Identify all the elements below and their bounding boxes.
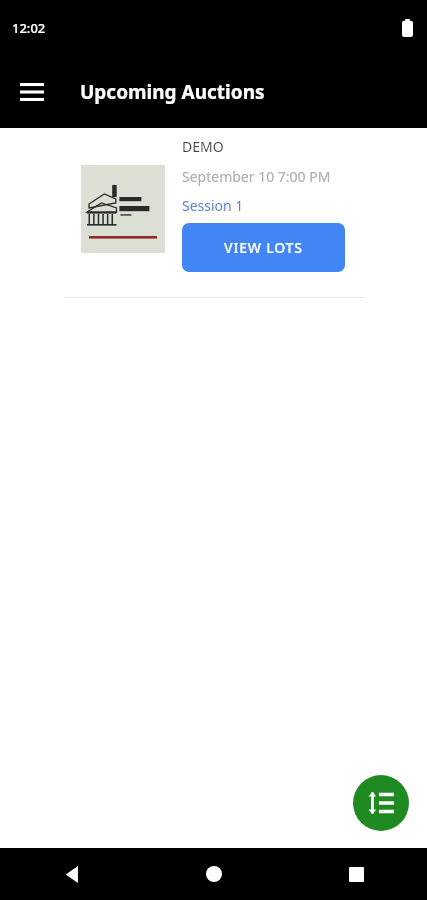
button[interactable]: Sort auctions — [353, 775, 409, 831]
staticText: Session 1 — [182, 196, 244, 215]
button[interactable]: VIEW LOTS — [182, 223, 345, 272]
staticText: 12:02 — [12, 19, 46, 37]
staticText: September 10 7:00 PM — [182, 167, 331, 186]
button[interactable]: Recent apps — [332, 850, 380, 898]
staticText: VIEW LOTS — [224, 238, 303, 257]
button[interactable]: Open navigation menu — [10, 70, 54, 114]
button[interactable]: Back — [48, 850, 96, 898]
staticText: Upcoming Auctions — [80, 79, 265, 105]
staticText: DEMO — [182, 137, 224, 156]
button[interactable]: Home — [190, 850, 238, 898]
